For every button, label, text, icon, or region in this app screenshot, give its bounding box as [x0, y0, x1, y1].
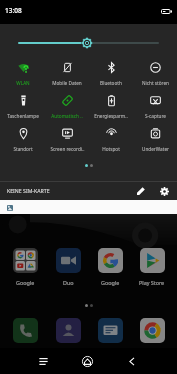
- staticText: Automatisch ..: [51, 113, 83, 119]
- staticText: KEINE SIM-KARTE: [7, 187, 50, 194]
- staticText: Mobile Daten: [52, 80, 82, 86]
- button[interactable]: Taschenlampe: [0, 90, 45, 123]
- button[interactable]: Standort: [0, 123, 45, 156]
- staticText: Hotspot: [102, 146, 120, 152]
- button[interactable]: WLAN: [0, 57, 45, 90]
- staticText: Screen recordi..: [50, 146, 85, 152]
- staticText: 13:08: [5, 6, 22, 15]
- staticText: UnderWater: [142, 146, 169, 152]
- button[interactable]: Google: [4, 248, 47, 286]
- staticText: Google: [16, 279, 35, 286]
- staticText: WLAN: [16, 80, 30, 86]
- button[interactable]: Back: [121, 351, 142, 372]
- staticText: Duo: [63, 279, 74, 286]
- staticText: Bluetooth: [100, 80, 122, 86]
- button[interactable]: Recent apps: [33, 351, 54, 372]
- staticText: Energiesparm..: [94, 113, 128, 119]
- staticText: Nicht stören: [142, 80, 169, 86]
- button[interactable]: Energiesparm..: [89, 90, 133, 123]
- staticText: Google: [101, 279, 120, 286]
- button[interactable]: Screen recordi..: [45, 123, 89, 156]
- button[interactable]: Mobile Daten: [45, 57, 89, 90]
- button[interactable]: [131, 318, 173, 343]
- button[interactable]: Edit quick settings: [133, 183, 149, 199]
- staticText: S-capture: [145, 113, 166, 119]
- button[interactable]: Duo: [47, 248, 89, 286]
- button[interactable]: Nicht stören: [133, 57, 177, 90]
- staticText: Taschenlampe: [7, 113, 39, 119]
- button[interactable]: Bluetooth: [89, 57, 133, 90]
- button[interactable]: S-capture: [133, 90, 177, 123]
- button[interactable]: Hotspot: [89, 123, 133, 156]
- button[interactable]: [89, 318, 131, 343]
- button[interactable]: Home: [77, 351, 98, 372]
- button[interactable]: Google: [89, 248, 131, 286]
- staticText: Play Store: [139, 279, 165, 286]
- staticText: Standort: [13, 146, 33, 152]
- button[interactable]: UnderWater: [133, 123, 177, 156]
- button[interactable]: Play Store: [131, 248, 173, 286]
- button[interactable]: [4, 318, 47, 343]
- button[interactable]: Automatisch ..: [45, 90, 89, 123]
- button[interactable]: Settings: [156, 183, 172, 199]
- button[interactable]: [47, 318, 89, 343]
